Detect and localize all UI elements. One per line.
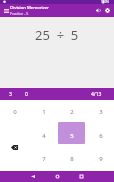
staticText: 0 xyxy=(25,91,28,98)
button[interactable]: Sound xyxy=(92,4,105,17)
staticText: 6 xyxy=(99,132,103,140)
staticText: 1 xyxy=(42,108,46,116)
button[interactable]: Open navigation menu xyxy=(0,4,12,17)
staticText: 2 xyxy=(70,108,74,116)
button[interactable]: 0 xyxy=(0,100,29,124)
button[interactable]: 8 xyxy=(57,147,86,171)
button[interactable]: 4 xyxy=(29,124,58,148)
button[interactable]: Back xyxy=(27,171,39,182)
staticText: 9 xyxy=(99,155,103,163)
button[interactable]: 9 xyxy=(86,147,114,171)
staticText: 8 xyxy=(70,155,74,163)
button[interactable]: 2 xyxy=(57,100,86,124)
button[interactable]: Home xyxy=(51,171,63,182)
button[interactable]: Recent apps xyxy=(75,171,87,182)
button[interactable]: 1 xyxy=(29,100,58,124)
staticText: 3 xyxy=(99,108,103,116)
staticText: 5 xyxy=(70,132,74,140)
staticText: 100% xyxy=(101,0,110,4)
staticText: Practice - 5 xyxy=(10,11,29,16)
button[interactable]: 3 xyxy=(86,100,114,124)
staticText: 4/13 xyxy=(91,91,102,98)
button[interactable]: Backspace xyxy=(0,124,29,171)
staticText: Division Memorizer xyxy=(10,5,49,11)
staticText: 25 ÷ 5 xyxy=(35,26,79,44)
staticText: 0 xyxy=(13,108,17,116)
button[interactable]: 7 xyxy=(29,147,58,171)
button[interactable]: 6 xyxy=(86,124,114,148)
button[interactable]: 5 xyxy=(57,124,86,148)
staticText: 7 xyxy=(42,155,46,163)
button[interactable]: Settings xyxy=(101,4,114,17)
staticText: 3 xyxy=(9,91,12,98)
staticText: 4 xyxy=(42,132,46,140)
